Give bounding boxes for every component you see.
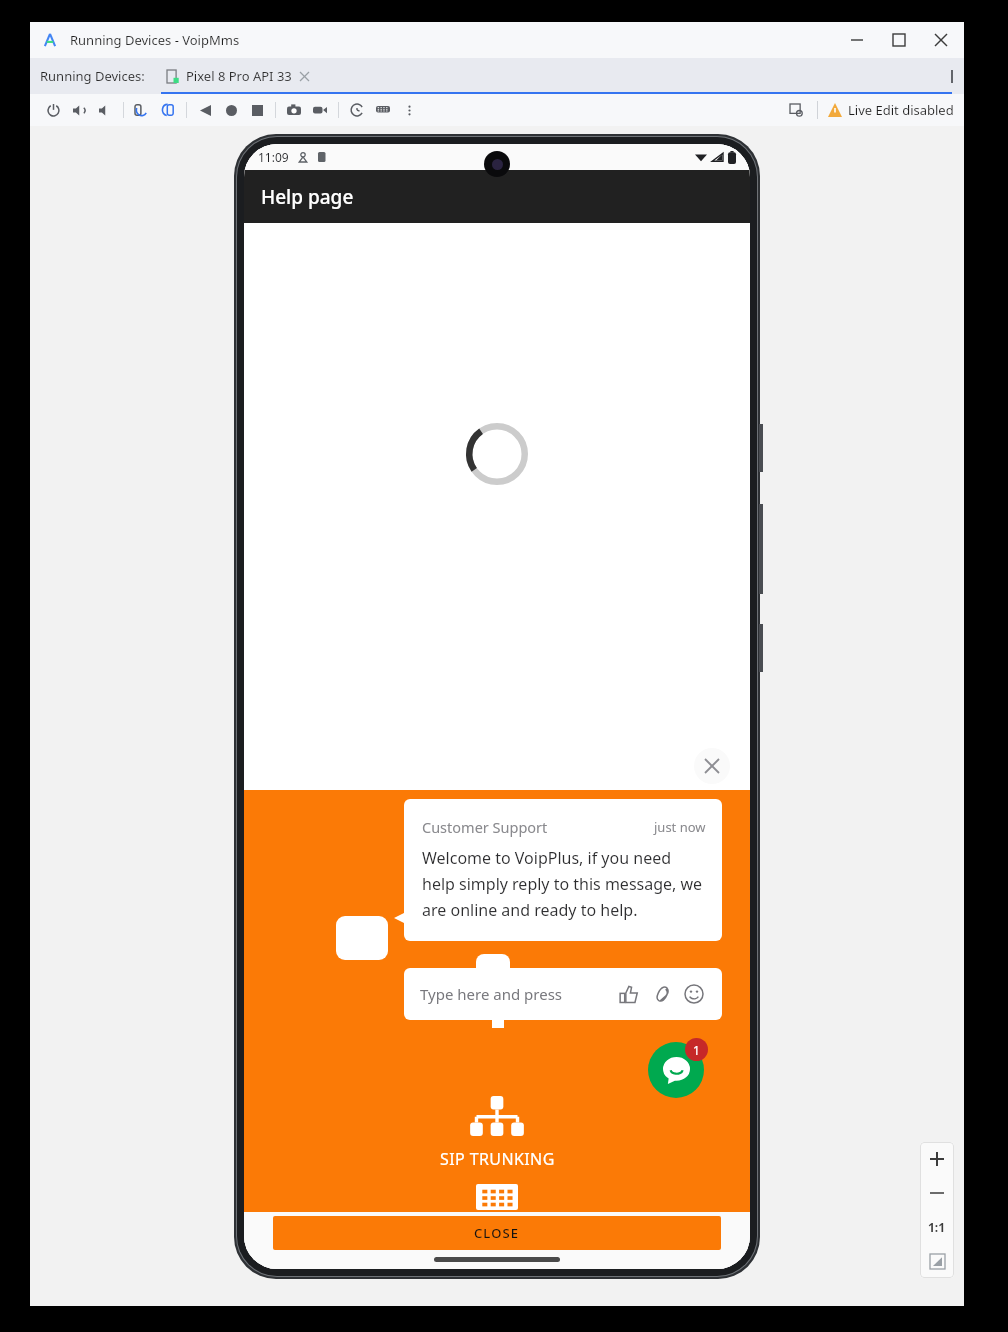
button[interactable]: Home bbox=[218, 97, 244, 123]
button[interactable]: Overview bbox=[244, 97, 270, 123]
button[interactable]: 1:1 bbox=[920, 1210, 954, 1244]
button[interactable]: Volume up bbox=[66, 97, 92, 123]
staticText: just now bbox=[654, 818, 706, 836]
staticText: 11:09 bbox=[258, 149, 289, 165]
button[interactable]: Open chat bbox=[648, 1042, 704, 1098]
button[interactable]: CLOSE bbox=[273, 1216, 721, 1250]
button[interactable]: Close chat bbox=[694, 748, 730, 784]
staticText: Running Devices - VoipMms bbox=[70, 31, 240, 49]
staticText: Help page bbox=[261, 184, 354, 210]
staticText: Pixel 8 Pro API 33 bbox=[186, 67, 292, 85]
staticText: 1 bbox=[693, 1042, 700, 1058]
button[interactable]: Inspect bbox=[783, 97, 809, 123]
button[interactable]: Volume down bbox=[92, 97, 118, 123]
button[interactable]: Zoom in bbox=[920, 1142, 954, 1176]
button[interactable]: Emoji bbox=[682, 982, 706, 1006]
button[interactable]: Rotate right bbox=[155, 97, 181, 123]
button[interactable]: Pixel 8 Pro API 33 bbox=[161, 58, 952, 94]
button[interactable]: Fit to window bbox=[920, 1244, 954, 1278]
button[interactable]: Minimize bbox=[846, 29, 868, 51]
staticText: Type here and press bbox=[420, 984, 563, 1004]
button[interactable]: Back bbox=[192, 97, 218, 123]
button[interactable]: Screenshot bbox=[281, 97, 307, 123]
button[interactable]: History bbox=[344, 97, 370, 123]
button[interactable]: Keyboard bbox=[370, 97, 396, 123]
staticText: 1:1 bbox=[928, 1219, 946, 1235]
staticText: CLOSE bbox=[474, 1224, 520, 1242]
staticText: SIP TRUNKING bbox=[440, 1148, 555, 1170]
staticText: Running Devices: bbox=[40, 67, 145, 85]
button[interactable]: Rotate left bbox=[129, 97, 155, 123]
button[interactable]: Zoom out bbox=[920, 1176, 954, 1210]
button[interactable]: power bbox=[40, 97, 66, 123]
button[interactable]: Live Edit disabled bbox=[828, 101, 954, 119]
button[interactable]: Like bbox=[616, 982, 640, 1006]
button[interactable]: Customer Support bbox=[404, 799, 722, 941]
button[interactable]: Record screen bbox=[307, 97, 333, 123]
button[interactable]: More bbox=[396, 97, 422, 123]
button[interactable]: Close bbox=[930, 29, 952, 51]
button[interactable]: Maximize bbox=[888, 29, 910, 51]
staticText: Welcome to VoipPlus, if you need help si… bbox=[422, 847, 706, 921]
button[interactable]: Attach file bbox=[649, 982, 673, 1006]
staticText: Live Edit disabled bbox=[848, 101, 954, 119]
button[interactable]: Type here and press bbox=[404, 968, 722, 1020]
staticText: Customer Support bbox=[422, 817, 548, 837]
